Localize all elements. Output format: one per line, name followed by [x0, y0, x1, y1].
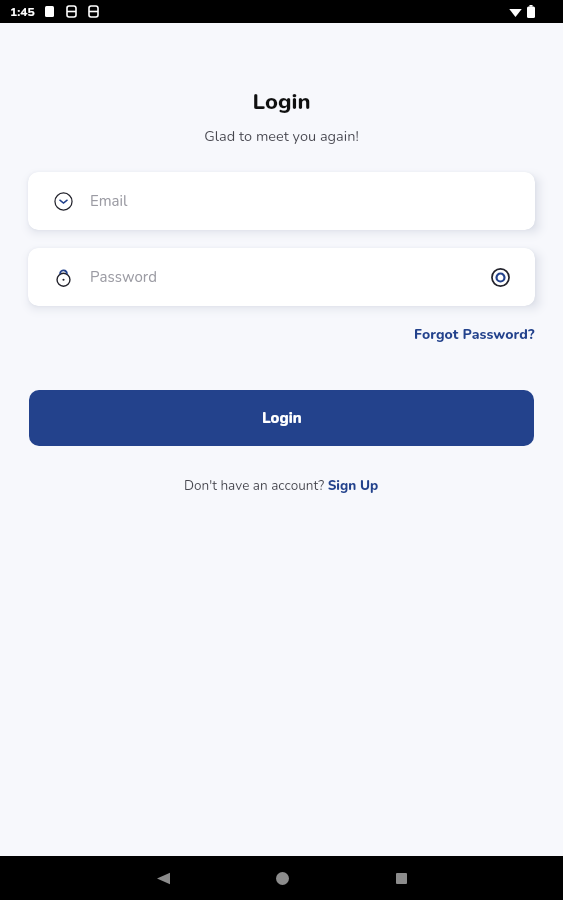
staticText: Login [0, 87, 563, 117]
button[interactable]: Password [28, 248, 535, 306]
staticText: Glad to meet you again! [0, 126, 563, 146]
button[interactable]: Don't have an account? Sign Up [180, 474, 383, 496]
staticText: Login [262, 408, 302, 428]
button[interactable]: Back [133, 856, 193, 900]
staticText: Password [90, 267, 157, 287]
staticText: Don't have an account? Sign Up [184, 476, 379, 494]
button[interactable]: Email [28, 172, 535, 230]
button[interactable]: Recent apps [371, 856, 431, 900]
button[interactable]: Home [252, 856, 312, 900]
staticText: Forgot Password? [414, 325, 535, 344]
button[interactable]: Forgot Password? [410, 323, 539, 346]
button[interactable]: Show password [482, 259, 519, 296]
button[interactable]: Login [29, 390, 534, 446]
staticText: 1:45 [10, 4, 35, 20]
staticText: Email [90, 191, 128, 211]
